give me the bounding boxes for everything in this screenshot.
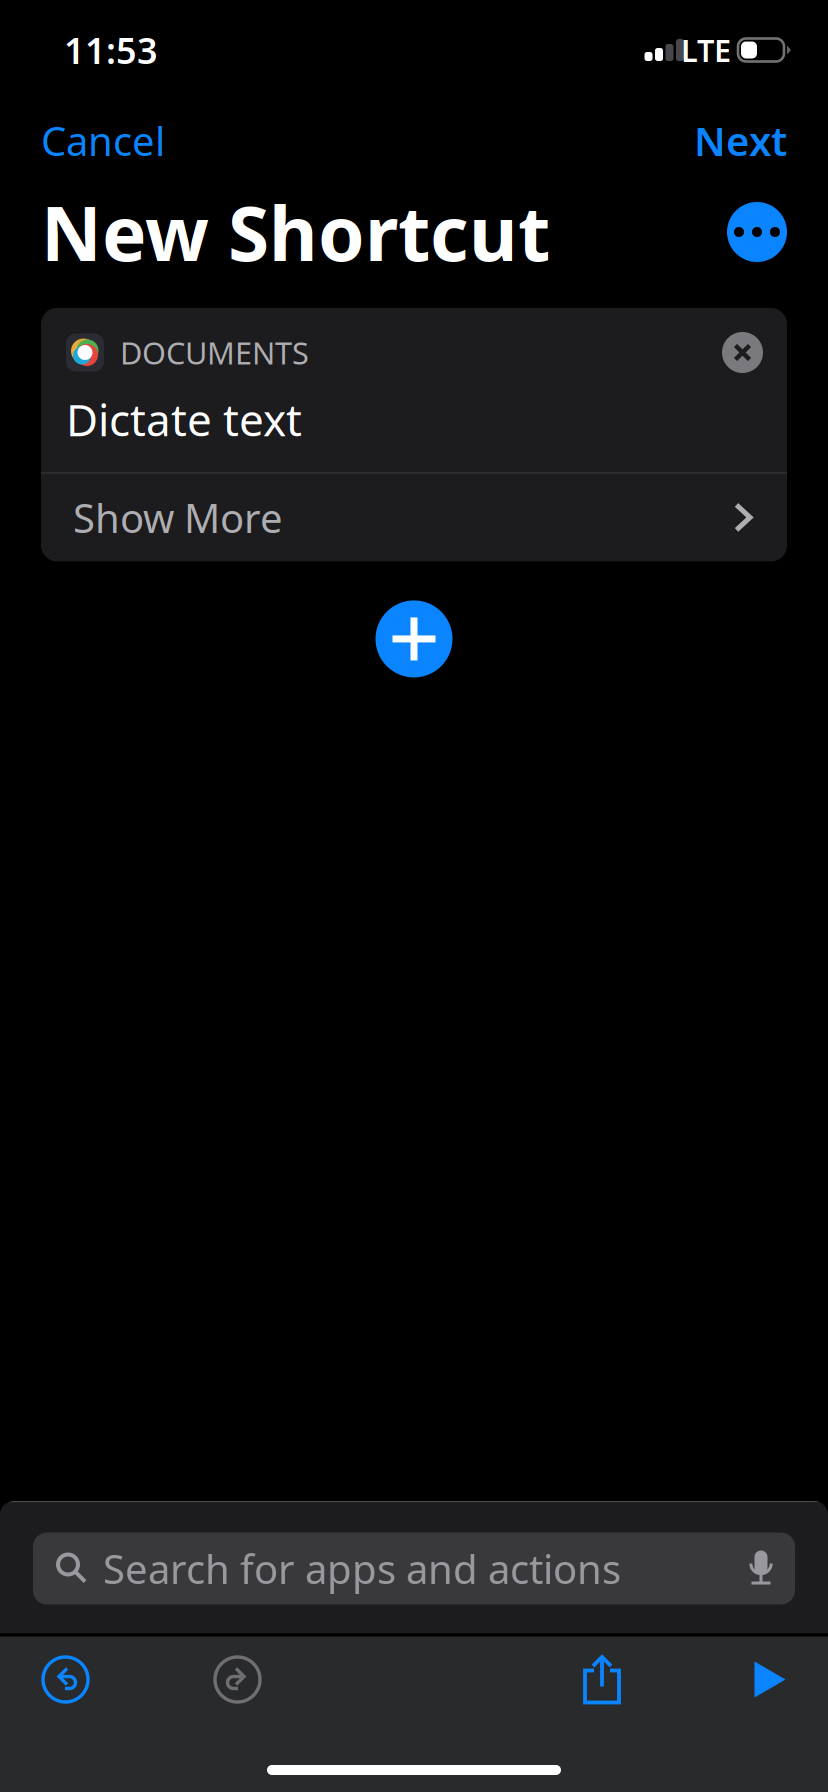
staticText: Cancel (41, 114, 165, 167)
button[interactable]: Share (579, 1653, 625, 1705)
staticText: Next (694, 114, 787, 167)
staticText: Show More (73, 491, 283, 544)
staticText: 11:53 (64, 26, 158, 74)
staticText: New Shortcut (41, 182, 550, 282)
button[interactable]: Next (670, 110, 787, 187)
staticText: LTE (681, 30, 731, 70)
staticText: Dictate text (66, 390, 302, 448)
button[interactable]: Redo (215, 1657, 260, 1702)
staticText: Search for apps and actions (103, 1542, 621, 1595)
staticText: DOCUMENTS (120, 332, 309, 373)
button[interactable]: Show More (41, 473, 787, 561)
button[interactable]: Run shortcut (753, 1660, 787, 1698)
button[interactable]: Add action (375, 600, 452, 677)
button[interactable]: Cancel (41, 110, 189, 187)
button[interactable]: Remove action (722, 332, 763, 373)
button[interactable]: Undo (43, 1657, 88, 1702)
button[interactable]: More options (727, 202, 787, 262)
